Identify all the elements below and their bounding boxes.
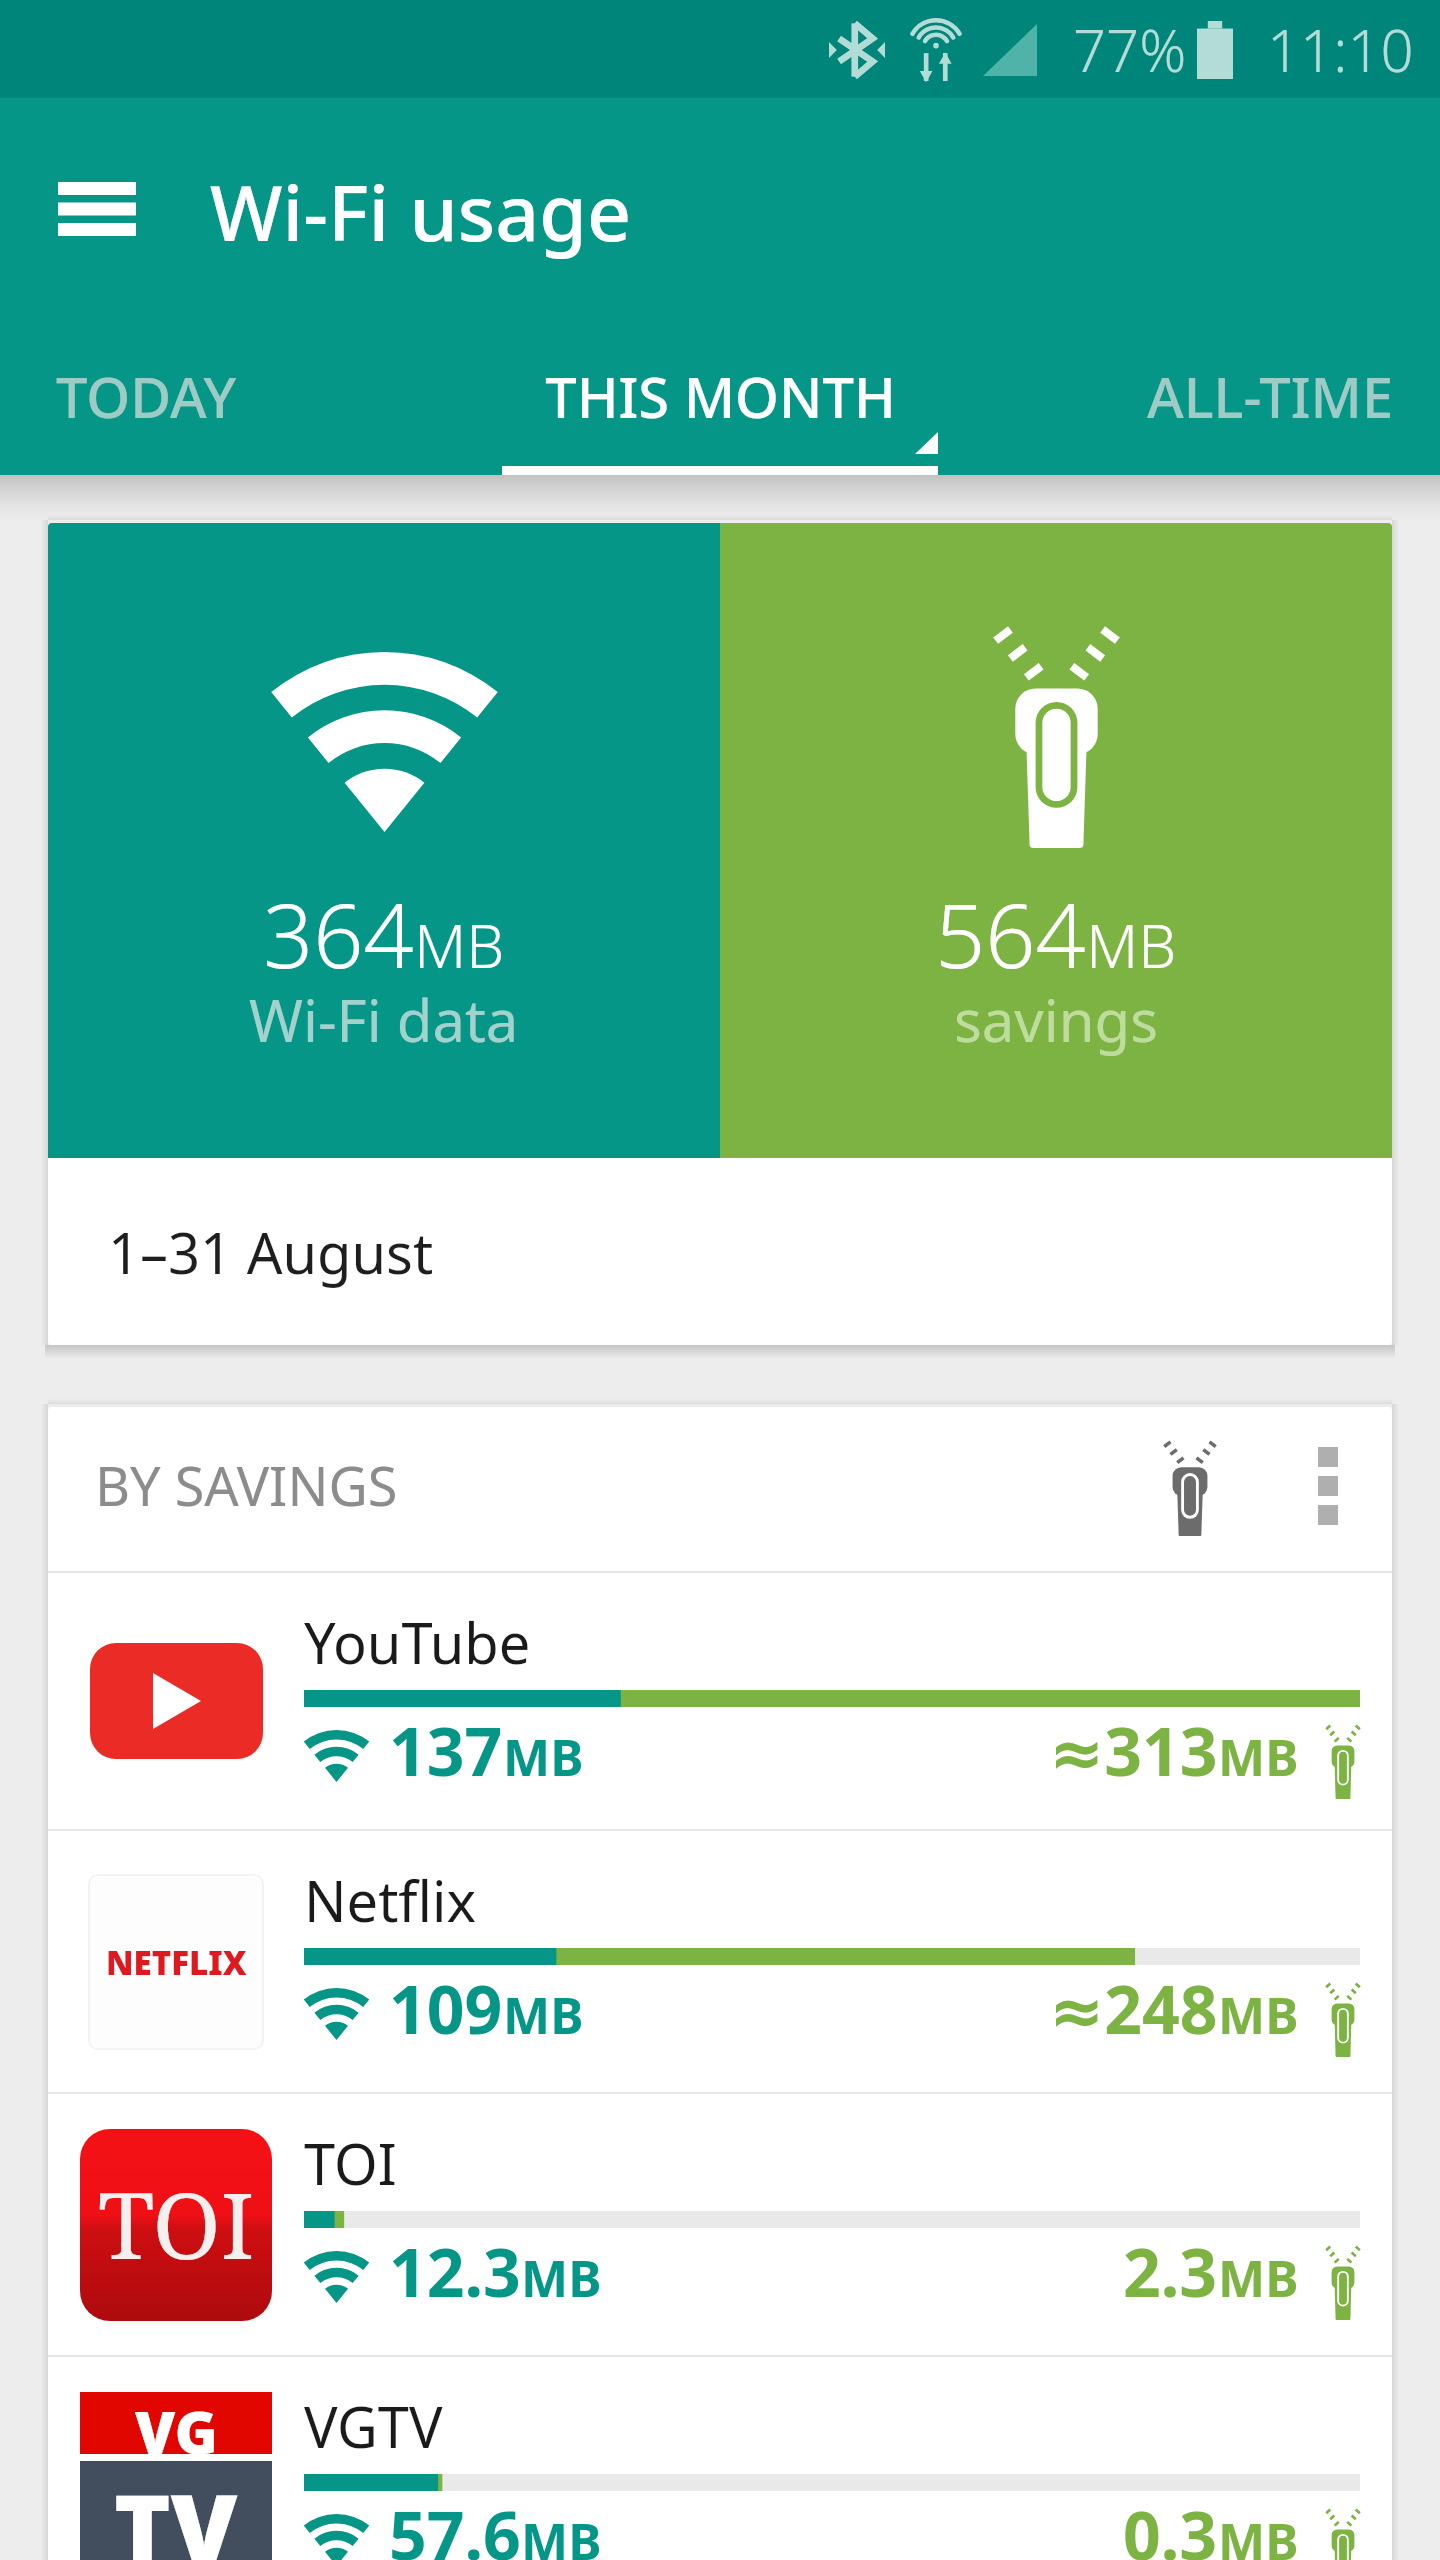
staticText: MB bbox=[503, 1723, 584, 1791]
button[interactable]: VG bbox=[48, 2357, 1392, 2560]
staticText: VG bbox=[135, 2392, 218, 2454]
staticText: 137 bbox=[389, 1705, 503, 1795]
button[interactable]: More options bbox=[1268, 1426, 1388, 1546]
staticText: TOI bbox=[98, 2161, 255, 2286]
staticText: Wi-Fi data bbox=[249, 980, 519, 1059]
button[interactable]: Open navigation drawer bbox=[19, 144, 175, 274]
staticText: MB bbox=[1218, 2244, 1299, 2312]
staticText: YouTube bbox=[304, 1604, 531, 1680]
button[interactable]: 1–31 August bbox=[48, 1158, 1392, 1345]
button[interactable]: Sort by savings bbox=[1130, 1428, 1250, 1548]
staticText: TV bbox=[114, 2461, 238, 2560]
button[interactable]: YouTube bbox=[48, 1573, 1392, 1829]
staticText: ≈313 bbox=[1049, 1705, 1218, 1795]
staticText: TODAY bbox=[56, 358, 237, 434]
staticText: NETFLIX bbox=[106, 1940, 247, 1985]
staticText: VGTV bbox=[304, 2388, 443, 2464]
staticText: 77% bbox=[1073, 10, 1187, 89]
staticText: 564 bbox=[935, 874, 1086, 994]
staticText: MB bbox=[503, 1981, 584, 2049]
staticText: 364 bbox=[263, 874, 414, 994]
button[interactable]: TOI bbox=[48, 2094, 1392, 2355]
staticText: TOI bbox=[304, 2125, 397, 2201]
staticText: 2.3 bbox=[1123, 2226, 1218, 2316]
staticText: MB bbox=[521, 2244, 602, 2312]
button[interactable]: TODAY bbox=[0, 348, 300, 475]
staticText: Wi-Fi usage bbox=[210, 159, 632, 264]
staticText: MB bbox=[521, 2507, 602, 2560]
staticText: 1–31 August bbox=[108, 1214, 434, 1290]
staticText: MB bbox=[1218, 2507, 1299, 2560]
staticText: THIS MONTH bbox=[545, 358, 896, 434]
staticText: savings bbox=[954, 980, 1159, 1059]
staticText: BY SAVINGS bbox=[95, 1448, 398, 1522]
staticText: MB bbox=[1218, 1723, 1299, 1791]
button[interactable]: THIS MONTH bbox=[460, 348, 980, 475]
button[interactable]: NETFLIX bbox=[48, 1831, 1392, 2092]
staticText: MB bbox=[1086, 904, 1177, 986]
staticText: 0.3 bbox=[1123, 2489, 1218, 2560]
staticText: Netflix bbox=[304, 1862, 477, 1938]
staticText: ≈248 bbox=[1049, 1963, 1218, 2053]
button[interactable]: 564 bbox=[720, 523, 1392, 1158]
staticText: 12.3 bbox=[389, 2226, 521, 2316]
staticText: 109 bbox=[389, 1963, 503, 2053]
staticText: MB bbox=[414, 904, 505, 986]
button[interactable]: 364 bbox=[48, 523, 720, 1158]
staticText: ALL-TIME bbox=[1147, 358, 1394, 434]
button[interactable]: ALL-TIME bbox=[1100, 348, 1440, 475]
staticText: MB bbox=[1218, 1981, 1299, 2049]
staticText: 57.6 bbox=[389, 2489, 521, 2560]
staticText: 11:10 bbox=[1267, 10, 1414, 89]
